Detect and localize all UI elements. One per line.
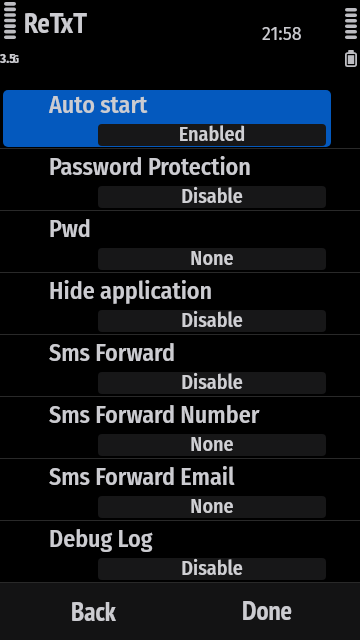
button[interactable]: Hide application — [0, 273, 360, 335]
staticText: Auto start — [49, 91, 148, 120]
staticText: Disable — [98, 558, 326, 578]
button[interactable]: Done — [188, 583, 360, 640]
button[interactable]: Sms Forward Number — [0, 397, 360, 459]
staticText: Enabled — [98, 124, 326, 144]
staticText: Done — [242, 593, 293, 628]
staticText: None — [98, 248, 326, 268]
button[interactable]: Password Protection — [0, 149, 360, 211]
staticText: None — [98, 496, 326, 516]
button[interactable]: Sms Forward Email — [0, 459, 360, 521]
staticText: Sms Forward Email — [49, 463, 235, 492]
staticText: Back — [71, 594, 116, 629]
staticText: Sms Forward Number — [49, 401, 260, 430]
staticText: Debug Log — [49, 525, 153, 554]
staticText: Password Protection — [49, 153, 251, 182]
button[interactable]: Pwd — [0, 211, 360, 273]
staticText: None — [98, 434, 326, 454]
staticText: 21:58 — [262, 23, 302, 45]
button[interactable]: Back — [0, 583, 188, 640]
button[interactable]: Debug Log — [0, 521, 360, 583]
staticText: ReTxT — [24, 3, 88, 41]
staticText: Pwd — [49, 215, 91, 244]
staticText: 3.5 — [0, 51, 16, 67]
staticText: Hide application — [49, 277, 213, 306]
button[interactable]: Sms Forward — [0, 335, 360, 397]
staticText: G — [13, 54, 19, 66]
staticText: Sms Forward — [49, 339, 176, 368]
staticText: Disable — [98, 310, 326, 330]
button[interactable]: Auto start — [0, 87, 360, 149]
staticText: Disable — [98, 372, 326, 392]
staticText: Disable — [98, 186, 326, 206]
